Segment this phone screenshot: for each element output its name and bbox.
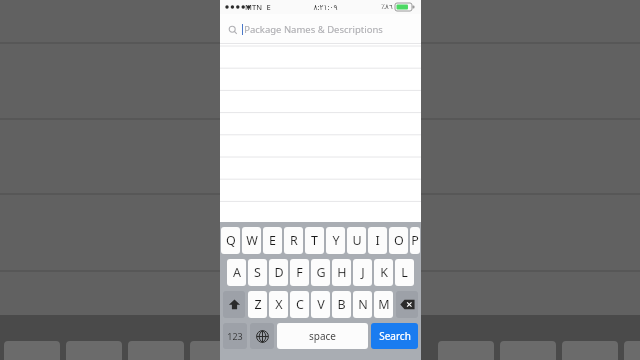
other: Search	[228, 25, 238, 35]
staticText: U	[352, 232, 362, 249]
staticText: M	[378, 296, 390, 313]
button[interactable]: W	[242, 227, 261, 254]
button[interactable]: X	[269, 291, 288, 318]
staticText: P	[411, 232, 419, 249]
staticText: B	[337, 296, 346, 313]
button[interactable]: Z	[248, 291, 267, 318]
staticText: MTN	[245, 2, 262, 12]
staticText: Q	[226, 232, 236, 249]
staticText: F	[296, 264, 303, 281]
staticText: D	[274, 264, 284, 281]
staticText: H	[337, 264, 347, 281]
staticText: E	[266, 2, 271, 12]
button[interactable]: T	[305, 227, 324, 254]
staticText: Package Names & Descriptions	[244, 23, 383, 36]
button[interactable]: K	[374, 259, 393, 286]
staticText: Z	[254, 296, 262, 313]
button[interactable]: D	[269, 259, 288, 286]
staticText: W	[246, 232, 258, 249]
button[interactable]: space	[277, 323, 368, 349]
staticText: N	[358, 296, 368, 313]
button[interactable]: Search	[220, 14, 421, 44]
button[interactable]: L	[395, 259, 414, 286]
button[interactable]: R	[284, 227, 303, 254]
staticText: Y	[332, 232, 340, 249]
button[interactable]: 123	[223, 323, 247, 349]
staticText: E	[269, 232, 276, 249]
button[interactable]: U	[347, 227, 366, 254]
staticText: G	[316, 264, 326, 281]
staticText: ٪٨٦	[381, 3, 393, 11]
staticText: Search	[379, 329, 411, 343]
button[interactable]: I	[368, 227, 387, 254]
button[interactable]: S	[248, 259, 267, 286]
button[interactable]: G	[311, 259, 330, 286]
staticText: R	[290, 232, 298, 249]
staticText: K	[380, 264, 388, 281]
button[interactable]: M	[374, 291, 393, 318]
button[interactable]: F	[290, 259, 309, 286]
button[interactable]: Y	[326, 227, 345, 254]
staticText: C	[296, 296, 304, 313]
button[interactable]: Shift	[223, 291, 245, 318]
staticText: J	[361, 264, 365, 281]
staticText: X	[275, 296, 283, 313]
staticText: A	[233, 264, 241, 281]
staticText: space	[309, 329, 336, 343]
button[interactable]: V	[311, 291, 330, 318]
staticText: S	[254, 264, 261, 281]
staticText: O	[394, 232, 404, 249]
button[interactable]: B	[332, 291, 351, 318]
staticText: ٨:٢١:٠٩	[313, 2, 338, 12]
button[interactable]: N	[353, 291, 372, 318]
staticText: T	[311, 232, 318, 249]
staticText: 123	[227, 330, 243, 342]
staticText: I	[375, 232, 380, 249]
button[interactable]: O	[389, 227, 408, 254]
button[interactable]: P	[410, 227, 420, 254]
button[interactable]: E	[263, 227, 282, 254]
button[interactable]: Change keyboard language	[250, 323, 274, 349]
button[interactable]: Q	[221, 227, 240, 254]
button[interactable]: Backspace	[396, 291, 418, 318]
staticText: L	[401, 264, 408, 281]
staticText: V	[317, 296, 325, 313]
button[interactable]: A	[227, 259, 246, 286]
button[interactable]: J	[353, 259, 372, 286]
button[interactable]: H	[332, 259, 351, 286]
button[interactable]: C	[290, 291, 309, 318]
button[interactable]: Search	[371, 323, 418, 349]
